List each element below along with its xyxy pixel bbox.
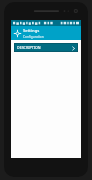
staticText: DESCRIPTION [17,45,41,50]
staticText: Configuration [23,35,44,39]
staticText: Settings [23,28,40,34]
button[interactable]: DESCRIPTION [14,43,78,52]
button[interactable]: Navigate up [13,29,22,38]
